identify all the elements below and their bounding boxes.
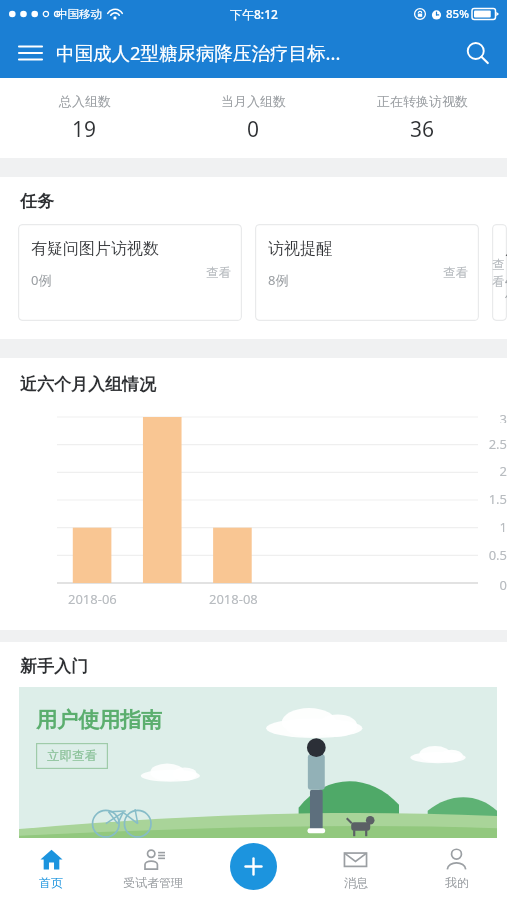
staticText: 0.5 [461, 546, 507, 564]
staticText: 正在转换访视数 [377, 93, 468, 109]
staticText: 查看 [443, 265, 468, 281]
staticText: 2018-08 [209, 590, 258, 608]
staticText: 中国成人2型糖尿病降压治疗目标... [56, 40, 341, 65]
staticText: 0例 [31, 271, 52, 289]
button[interactable]: 访视提醒 [255, 224, 479, 321]
staticText: 3 [461, 410, 507, 423]
staticText: 36 [410, 115, 435, 144]
staticText: 立即查看 [47, 748, 97, 764]
staticText: 近六个月入组情况 [20, 374, 156, 395]
staticText: 中国移动 [56, 7, 102, 21]
staticText: 0 [247, 115, 260, 144]
staticText: 85% [446, 6, 469, 22]
button[interactable]: 首页 [0, 838, 102, 900]
staticText: 2018-06 [68, 590, 117, 608]
staticText: 2.5 [461, 435, 507, 453]
staticText: 下午8:12 [230, 6, 278, 22]
button[interactable]: 用户使用指南 [19, 687, 497, 838]
staticText: 有疑问图片访视数 [31, 239, 159, 259]
staticText: 新手入门 [20, 656, 88, 677]
button[interactable]: Menu [10, 33, 50, 73]
staticText: 1 [461, 518, 507, 536]
staticText: 1.5 [461, 490, 507, 508]
button[interactable]: 有疑问图片访视数 [18, 224, 242, 321]
staticText: 查看 [206, 265, 231, 281]
button[interactable]: Add [230, 843, 277, 890]
staticText: 查看 [492, 257, 496, 289]
button[interactable]: 受试者管理 [102, 838, 204, 900]
staticText: 0 [461, 576, 507, 590]
staticText: 任务 [20, 191, 54, 212]
staticText: 用户使用指南 [36, 707, 162, 733]
staticText: 我的 [445, 875, 469, 890]
button[interactable]: 总入组数 [0, 78, 169, 158]
staticText: 消息 [344, 875, 368, 890]
button[interactable]: 正在转换访视数 [338, 78, 507, 158]
staticText: 当月入组数 [221, 93, 286, 109]
button[interactable]: Search [456, 32, 498, 74]
staticText: 总入组数 [59, 93, 111, 109]
staticText: 2 [461, 462, 507, 480]
staticText: 受试者管理 [123, 875, 183, 890]
button[interactable]: 立即查看 [36, 743, 108, 769]
button[interactable]: 质疑未回复数 [492, 224, 507, 321]
staticText: 访视提醒 [268, 239, 332, 259]
button[interactable]: 消息 [305, 838, 406, 900]
button[interactable]: 当月入组数 [169, 78, 338, 158]
staticText: 19 [72, 115, 97, 144]
button[interactable]: 我的 [406, 838, 507, 900]
staticText: 8例 [268, 271, 289, 289]
staticText: 首页 [39, 875, 63, 890]
